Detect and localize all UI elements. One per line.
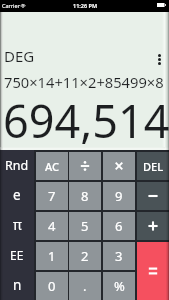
staticText: DEL [143,159,164,174]
staticText: . [83,277,87,295]
button[interactable]: 8 [69,182,101,210]
button[interactable]: 9 [103,182,135,210]
button[interactable]: Subtract [137,182,169,210]
staticText: n [13,276,22,294]
button[interactable]: Equals [137,242,169,300]
button[interactable]: Divide [69,152,101,180]
button[interactable]: Add [137,212,169,240]
staticText: π [13,216,22,234]
button[interactable]: 4 [36,212,68,240]
button[interactable]: e [0,180,34,210]
button[interactable]: π [0,210,34,240]
button[interactable]: 5 [69,212,101,240]
staticText: Carrier [2,2,20,9]
button[interactable]: 6 [103,212,135,240]
button[interactable]: 3 [103,242,135,270]
staticText: AC [45,159,59,174]
staticText: 750×14+11×2+85499×8 [4,72,164,92]
button[interactable]: 0 [36,272,68,300]
button[interactable]: 2 [69,242,101,270]
staticText: 1 [48,247,56,265]
staticText: DEG [4,46,35,66]
staticText: 9 [115,187,123,205]
button[interactable]: n [0,270,34,300]
staticText: % [114,277,125,295]
button[interactable]: More options [150,49,168,70]
staticText: 5 [81,217,89,235]
staticText: 694,514 [3,90,169,151]
button[interactable]: DEL [137,152,169,180]
staticText: 7 [48,187,56,205]
staticText: 6 [115,217,123,235]
button[interactable]: Rnd [0,150,34,180]
button[interactable]: 1 [36,242,68,270]
staticText: 11:26 PM [73,2,98,9]
staticText: EE [10,247,24,263]
staticText: 8 [81,187,89,205]
button[interactable]: EE [0,240,34,270]
staticText: 0 [48,277,56,295]
staticText: 4 [48,217,56,235]
button[interactable]: AC [36,152,68,180]
button[interactable]: 7 [36,182,68,210]
button[interactable]: . [69,272,101,300]
staticText: Rnd [5,157,29,174]
staticText: e [13,186,21,204]
staticText: 3 [115,247,123,265]
staticText: 2 [81,247,89,265]
button[interactable]: % [103,272,135,300]
button[interactable]: Multiply [103,152,135,180]
